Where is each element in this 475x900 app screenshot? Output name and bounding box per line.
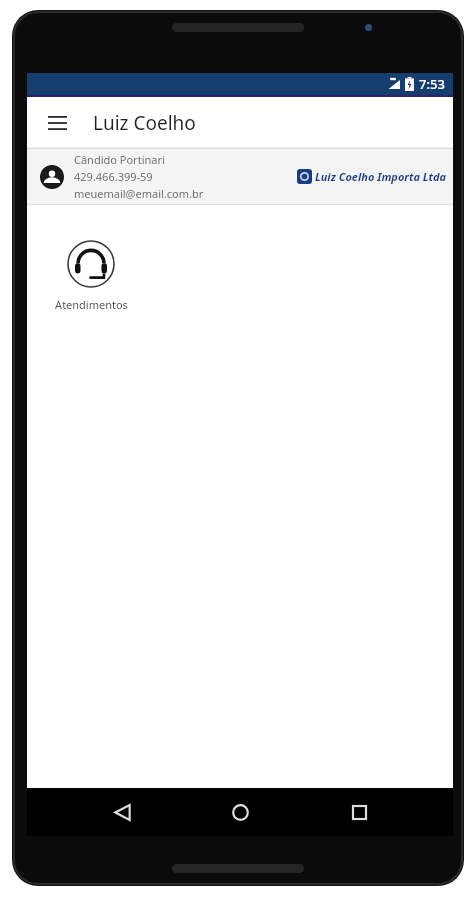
button[interactable]: Atendimentos [50,240,132,312]
staticText: 7:53 [419,75,445,93]
button[interactable]: Recent apps [335,788,383,836]
staticText: meuemail@email.com.br [74,186,204,201]
button[interactable]: Home [216,788,264,836]
staticText: Luiz Coelho [93,110,196,136]
staticText: Atendimentos [55,297,128,312]
button[interactable]: Open navigation menu [37,103,77,143]
button[interactable]: Cândido Portinari [27,148,453,205]
staticText: 429.466.399-59 [74,169,153,184]
staticText: Cândido Portinari [74,152,165,167]
button[interactable]: Back [98,788,146,836]
staticText: Luiz Coelho Importa Ltda [315,169,447,184]
